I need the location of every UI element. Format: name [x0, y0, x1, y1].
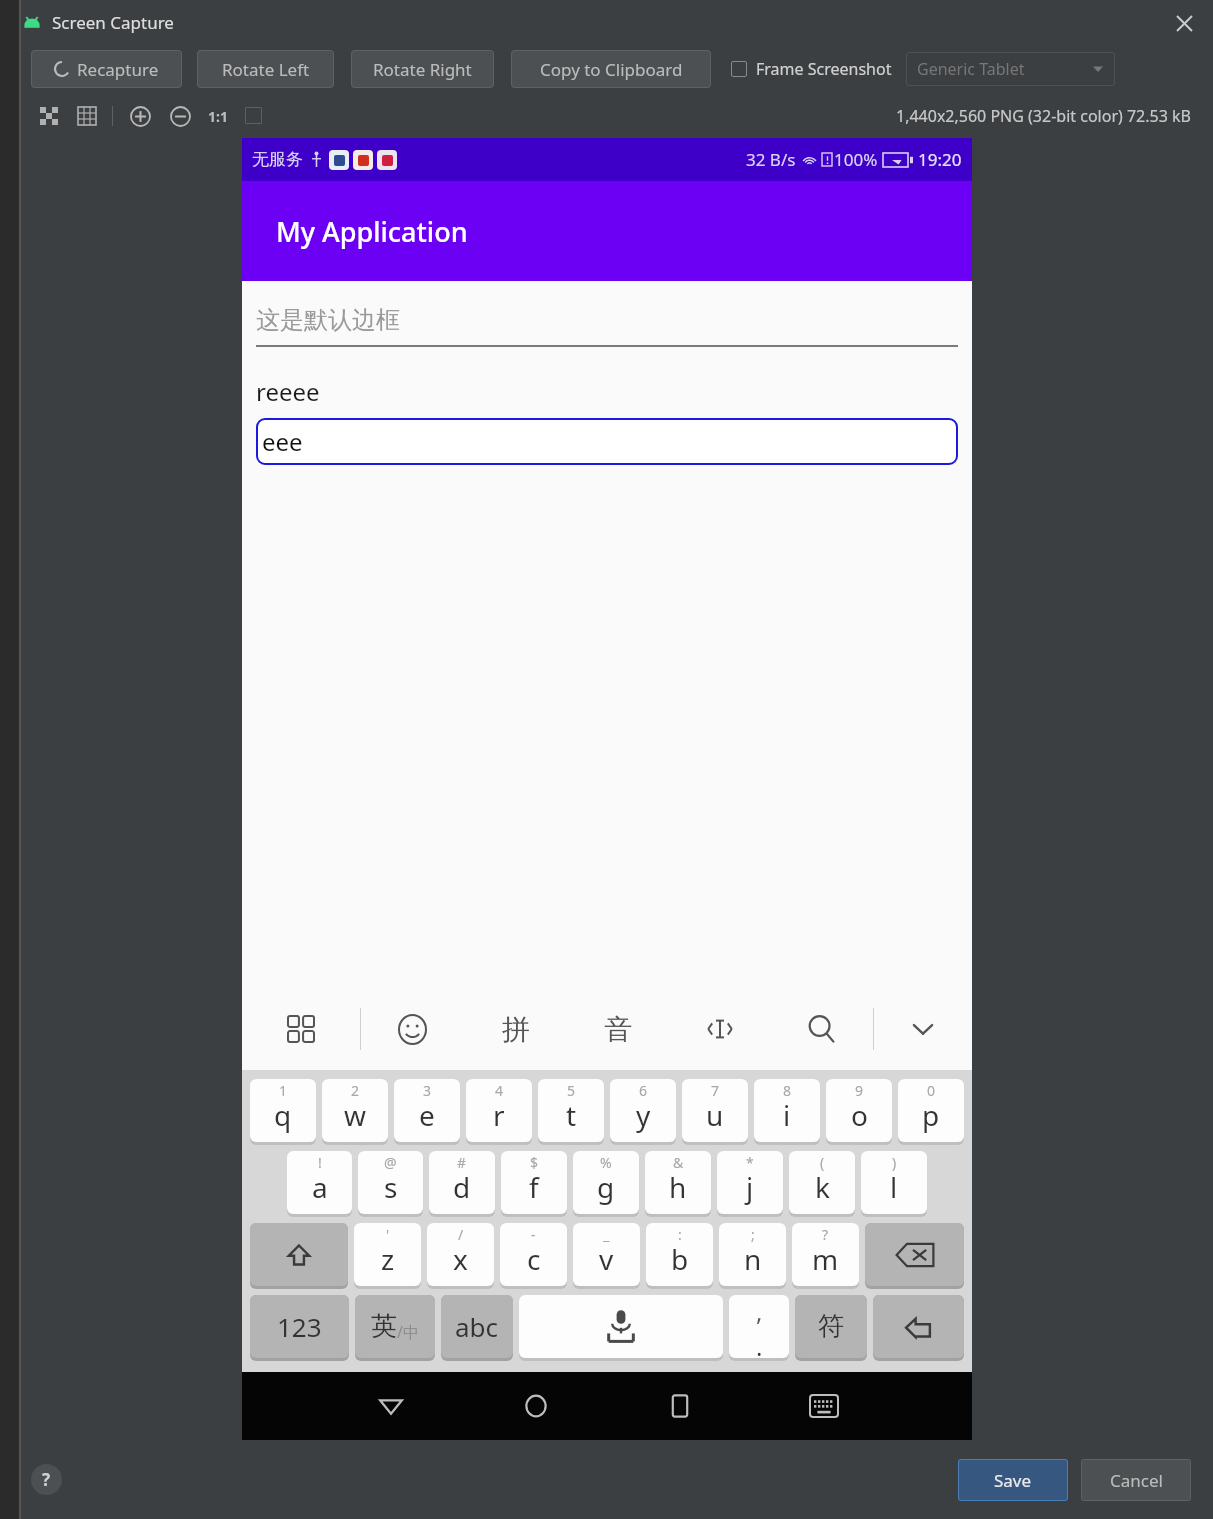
- button[interactable]: Recents: [648, 1374, 712, 1438]
- staticText: -: [531, 1225, 536, 1244]
- button[interactable]: _: [573, 1223, 640, 1286]
- button[interactable]: Hide keyboard: [874, 988, 972, 1070]
- staticText: ): [892, 1153, 897, 1172]
- button[interactable]: Zoom to fit: [38, 105, 60, 127]
- button[interactable]: 1: [250, 1079, 316, 1142]
- staticText: _: [603, 1225, 610, 1244]
- button[interactable]: Emoji: [361, 988, 464, 1070]
- staticText: 这是默认边框: [256, 305, 400, 335]
- button[interactable]: Fit to screen: [245, 107, 262, 124]
- staticText: &: [673, 1153, 684, 1172]
- button[interactable]: Rotate Right: [351, 50, 494, 88]
- button[interactable]: -: [500, 1223, 567, 1286]
- button[interactable]: Cancel: [1081, 1459, 1191, 1501]
- button[interactable]: (: [789, 1151, 855, 1214]
- button[interactable]: Switch keyboard: [792, 1374, 856, 1438]
- staticText: 8: [783, 1081, 792, 1100]
- button[interactable]: *: [717, 1151, 783, 1214]
- button[interactable]: 0: [898, 1079, 964, 1142]
- staticText: n: [744, 1240, 762, 1278]
- staticText: Recapture: [77, 58, 159, 81]
- staticText: $: [530, 1153, 539, 1172]
- staticText: t: [566, 1096, 577, 1134]
- staticText: j: [746, 1168, 754, 1206]
- staticText: r: [493, 1096, 505, 1134]
- button[interactable]: Space: [519, 1295, 723, 1358]
- button[interactable]: /: [427, 1223, 494, 1286]
- staticText: 无服务: [252, 149, 303, 170]
- button[interactable]: Home: [504, 1374, 568, 1438]
- button[interactable]: @: [358, 1151, 423, 1214]
- staticText: Rotate Right: [373, 58, 472, 81]
- staticText: Screen Capture: [52, 11, 174, 34]
- button[interactable]: 1:1: [205, 103, 231, 129]
- button[interactable]: abc: [441, 1295, 513, 1358]
- button[interactable]: Grid: [76, 105, 98, 127]
- staticText: k: [815, 1168, 830, 1206]
- button[interactable]: 123: [250, 1295, 349, 1358]
- button[interactable]: Keyboard layouts: [242, 988, 360, 1070]
- button[interactable]: Shift: [250, 1223, 348, 1286]
- button[interactable]: !: [287, 1151, 352, 1214]
- button[interactable]: 3: [394, 1079, 460, 1142]
- staticText: y: [636, 1096, 651, 1134]
- staticText: 7: [711, 1081, 720, 1100]
- button[interactable]: Copy to Clipboard: [511, 50, 711, 88]
- button[interactable]: Zoom out: [167, 103, 193, 129]
- button[interactable]: 5: [538, 1079, 604, 1142]
- button[interactable]: 英: [355, 1295, 435, 1358]
- staticText: 2: [351, 1081, 360, 1100]
- staticText: My Application: [276, 213, 468, 250]
- staticText: ?: [822, 1225, 829, 1244]
- button[interactable]: %: [573, 1151, 639, 1214]
- button[interactable]: eee: [256, 418, 958, 465]
- staticText: d: [453, 1168, 471, 1206]
- staticText: p: [922, 1096, 940, 1134]
- button[interactable]: Generic Tablet: [906, 52, 1115, 86]
- button[interactable]: Help: [31, 1464, 62, 1495]
- staticText: f: [529, 1168, 539, 1206]
- button[interactable]: 符: [795, 1295, 867, 1358]
- button[interactable]: 音: [567, 988, 669, 1070]
- staticText: !: [318, 1153, 322, 1172]
- staticText: 4: [495, 1081, 504, 1100]
- staticText: 100%: [834, 148, 878, 171]
- staticText: 5: [567, 1081, 576, 1100]
- button[interactable]: Back: [359, 1374, 423, 1438]
- button[interactable]: ': [354, 1223, 421, 1286]
- button[interactable]: 6: [610, 1079, 676, 1142]
- button[interactable]: ): [861, 1151, 927, 1214]
- staticText: u: [706, 1096, 724, 1134]
- button[interactable]: 9: [826, 1079, 892, 1142]
- button[interactable]: ?: [792, 1223, 859, 1286]
- button[interactable]: 拼: [464, 988, 567, 1070]
- staticText: 音: [604, 1012, 632, 1047]
- button[interactable]: :: [646, 1223, 713, 1286]
- button[interactable]: Save: [958, 1459, 1068, 1501]
- button[interactable]: 2: [322, 1079, 388, 1142]
- staticText: Cancel: [1110, 1469, 1163, 1492]
- staticText: Save: [994, 1469, 1032, 1492]
- button[interactable]: $: [501, 1151, 567, 1214]
- button[interactable]: Close: [1169, 8, 1199, 38]
- staticText: /: [458, 1225, 464, 1244]
- button[interactable]: &: [645, 1151, 711, 1214]
- button[interactable]: 4: [466, 1079, 532, 1142]
- button[interactable]: Move cursor: [669, 988, 771, 1070]
- button[interactable]: 8: [754, 1079, 820, 1142]
- staticText: ;: [751, 1225, 755, 1244]
- staticText: 19:20: [918, 148, 962, 171]
- staticText: *: [746, 1153, 754, 1172]
- button[interactable]: 7: [682, 1079, 748, 1142]
- staticText: reeee: [256, 375, 320, 408]
- button[interactable]: Enter: [873, 1295, 964, 1358]
- button[interactable]: Search: [771, 988, 873, 1070]
- button[interactable]: Zoom in: [127, 103, 153, 129]
- button[interactable]: #: [429, 1151, 495, 1214]
- button[interactable]: Frame Screenshot: [731, 58, 892, 80]
- button[interactable]: ;: [719, 1223, 786, 1286]
- button[interactable]: Recapture: [31, 50, 182, 88]
- button[interactable]: Rotate Left: [197, 50, 334, 88]
- button[interactable]: Backspace: [865, 1223, 964, 1286]
- button[interactable]: ,: [729, 1295, 789, 1358]
